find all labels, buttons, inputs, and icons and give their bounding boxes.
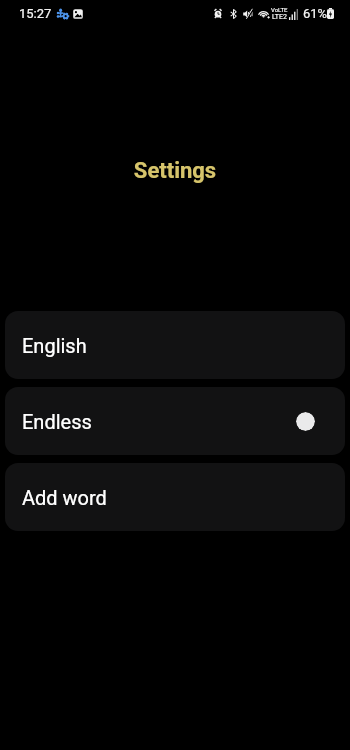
button[interactable]: Add word: [5, 463, 345, 531]
staticText: Endless: [22, 410, 92, 433]
button[interactable]: Endless: [5, 387, 345, 455]
staticText: 15:27: [19, 6, 52, 21]
staticText: English: [22, 334, 87, 357]
staticText: 61%: [303, 6, 328, 21]
button[interactable]: Toggle Endless: [296, 412, 315, 431]
staticText: Add word: [22, 486, 107, 509]
staticText: VoLTE: [271, 6, 288, 13]
staticText: LTE2: [272, 13, 287, 21]
button[interactable]: English: [5, 311, 345, 379]
staticText: Settings: [0, 158, 350, 184]
